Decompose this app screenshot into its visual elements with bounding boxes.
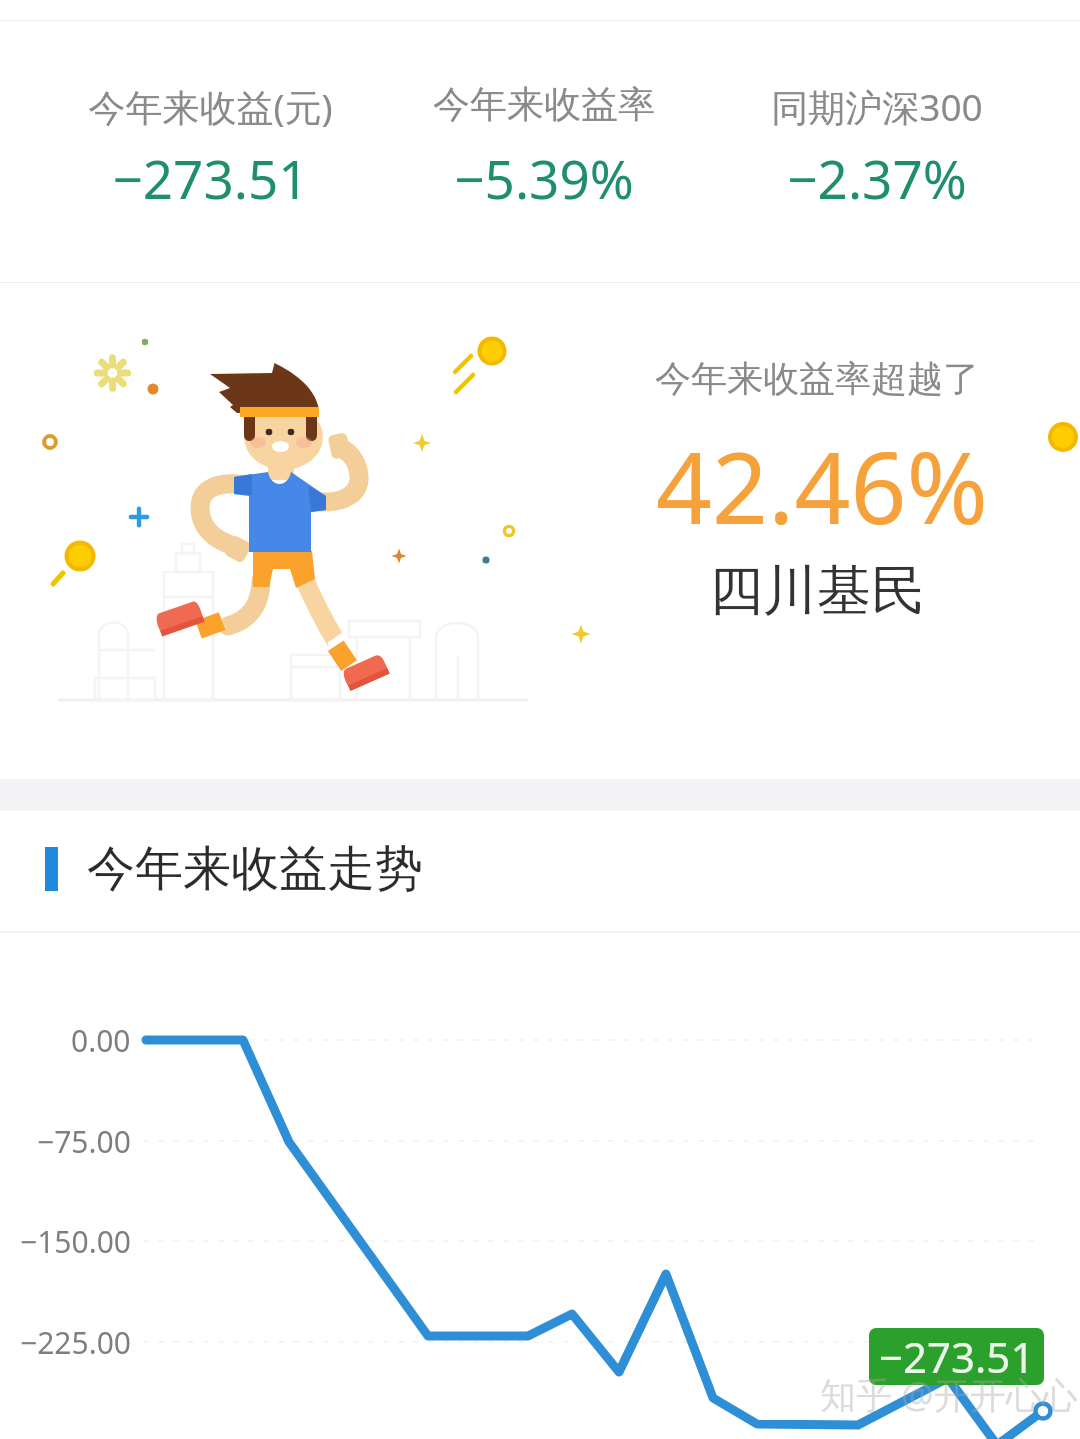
staticText: −2.37% — [787, 142, 967, 214]
staticText: 知乎 @开开心心 — [820, 1370, 1078, 1419]
staticText: 0.00 — [71, 1020, 131, 1061]
staticText: 同期沪深300 — [771, 81, 983, 132]
button[interactable]: 今年来收益率 — [377, 21, 710, 282]
staticText: −150.00 — [20, 1221, 131, 1262]
staticText: 今年来收益走势 — [87, 839, 423, 899]
staticText: −225.00 — [20, 1322, 131, 1363]
staticText: 四川基民 — [709, 557, 925, 625]
staticText: 42.46% — [656, 419, 988, 552]
button[interactable]: 今年来收益(元) — [44, 21, 377, 282]
staticText: −5.39% — [454, 142, 634, 214]
staticText: −273.51 — [112, 142, 309, 214]
button[interactable]: 今年来收益走势 — [0, 811, 1080, 931]
staticText: −273.51 — [879, 1328, 1035, 1385]
staticText: 今年来收益率 — [433, 81, 655, 128]
staticText: 今年来收益率超越了 — [655, 356, 979, 401]
button[interactable]: −273.51 — [869, 1328, 1044, 1385]
staticText: 今年来收益(元) — [88, 81, 333, 132]
staticText: −75.00 — [37, 1121, 131, 1162]
button[interactable]: 同期沪深300 — [710, 21, 1043, 282]
